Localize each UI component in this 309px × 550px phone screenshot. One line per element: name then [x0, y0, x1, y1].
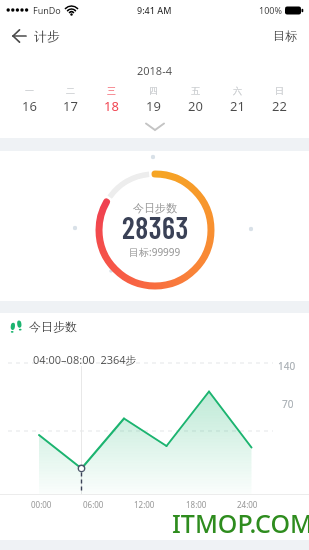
- staticText: 计步: [34, 28, 60, 44]
- staticText: 16: [22, 97, 37, 115]
- button[interactable]: 四: [132, 85, 174, 115]
- staticText: ITMOP.COM: [172, 506, 309, 540]
- button[interactable]: 目标: [273, 28, 309, 43]
- button[interactable]: [144, 122, 166, 132]
- staticText: 六: [233, 85, 242, 96]
- staticText: 18:00: [186, 499, 207, 510]
- button[interactable]: 日: [258, 85, 300, 115]
- staticText: 21: [230, 97, 245, 115]
- staticText: 日: [275, 85, 284, 96]
- staticText: 一: [25, 85, 34, 96]
- staticText: 五: [191, 85, 200, 96]
- button[interactable]: 计步: [12, 28, 60, 44]
- button[interactable]: 二: [50, 85, 91, 115]
- staticText: 19: [146, 97, 161, 115]
- staticText: 28363: [122, 209, 189, 245]
- staticText: 06:00: [83, 499, 104, 510]
- staticText: 04:00–08:00 2364步: [33, 352, 137, 367]
- button[interactable]: 六: [216, 85, 258, 115]
- staticText: 今日步数: [133, 201, 177, 215]
- staticText: 目标:99999: [129, 245, 181, 259]
- staticText: 今日步数: [29, 319, 77, 334]
- staticText: FunDo: [33, 4, 61, 16]
- button[interactable]: 一: [9, 85, 50, 115]
- button[interactable]: 五: [174, 85, 216, 115]
- staticText: 四: [149, 85, 158, 96]
- staticText: 24:00: [237, 499, 258, 510]
- button[interactable]: 三: [91, 85, 132, 115]
- staticText: 二: [66, 85, 75, 96]
- staticText: 17: [63, 97, 78, 115]
- staticText: 12:00: [134, 499, 155, 510]
- staticText: 140: [278, 359, 296, 373]
- staticText: 22: [272, 97, 287, 115]
- staticText: 100%: [259, 4, 282, 16]
- staticText: 9:41 AM: [137, 4, 172, 16]
- staticText: 18: [104, 97, 119, 115]
- staticText: 00:00: [31, 499, 52, 510]
- staticText: 70: [282, 397, 294, 411]
- staticText: 三: [107, 85, 116, 96]
- staticText: 2018-4: [0, 63, 309, 78]
- staticText: 目标: [273, 28, 297, 43]
- staticText: 20: [188, 97, 203, 115]
